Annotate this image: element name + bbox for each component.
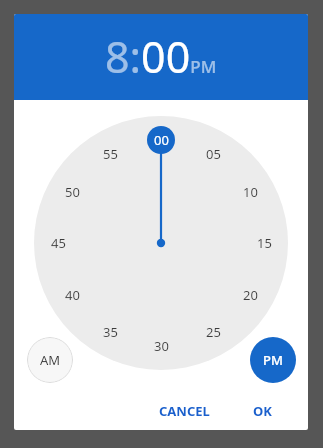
staticText: 20 xyxy=(243,286,258,304)
button[interactable]: OK xyxy=(236,396,288,426)
staticText: 30 xyxy=(154,337,169,355)
staticText: 05 xyxy=(206,145,221,163)
staticText: AM xyxy=(40,351,61,369)
staticText: 45 xyxy=(51,234,66,252)
staticText: 50 xyxy=(65,183,80,201)
staticText: 00 xyxy=(154,131,169,149)
button[interactable]: PM xyxy=(250,337,296,383)
staticText: CANCEL xyxy=(159,402,210,420)
staticText: 40 xyxy=(65,286,80,304)
staticText: 15 xyxy=(257,234,272,252)
staticText: OK xyxy=(253,402,272,420)
staticText: PM xyxy=(263,351,283,369)
staticText: 35 xyxy=(103,323,118,341)
button[interactable]: Minute clock face, 00 selected xyxy=(34,116,288,370)
staticText: 25 xyxy=(206,323,221,341)
button[interactable]: AM xyxy=(27,337,73,383)
staticText: 55 xyxy=(103,145,118,163)
staticText: 10 xyxy=(243,183,258,201)
button[interactable]: CANCEL xyxy=(147,396,221,426)
staticText: 8:00PM xyxy=(105,27,217,86)
